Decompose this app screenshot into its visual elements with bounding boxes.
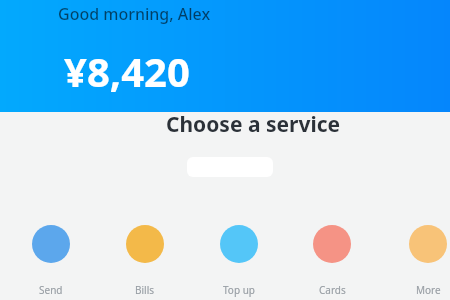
staticText: Bills: [135, 283, 155, 297]
staticText: ¥8,420: [64, 44, 190, 98]
staticText: Cards: [319, 283, 346, 297]
staticText: Choose a service: [155, 110, 351, 132]
button[interactable]: Cards: [296, 225, 368, 297]
button[interactable]: Send: [15, 225, 87, 297]
button[interactable]: Bills: [109, 225, 181, 297]
staticText: More: [416, 283, 441, 297]
staticText: Top up: [223, 283, 255, 297]
button[interactable]: More: [392, 225, 450, 297]
button[interactable]: Top up: [203, 225, 275, 297]
staticText: Good morning, Alex: [58, 3, 211, 25]
staticText: Send: [39, 283, 63, 297]
